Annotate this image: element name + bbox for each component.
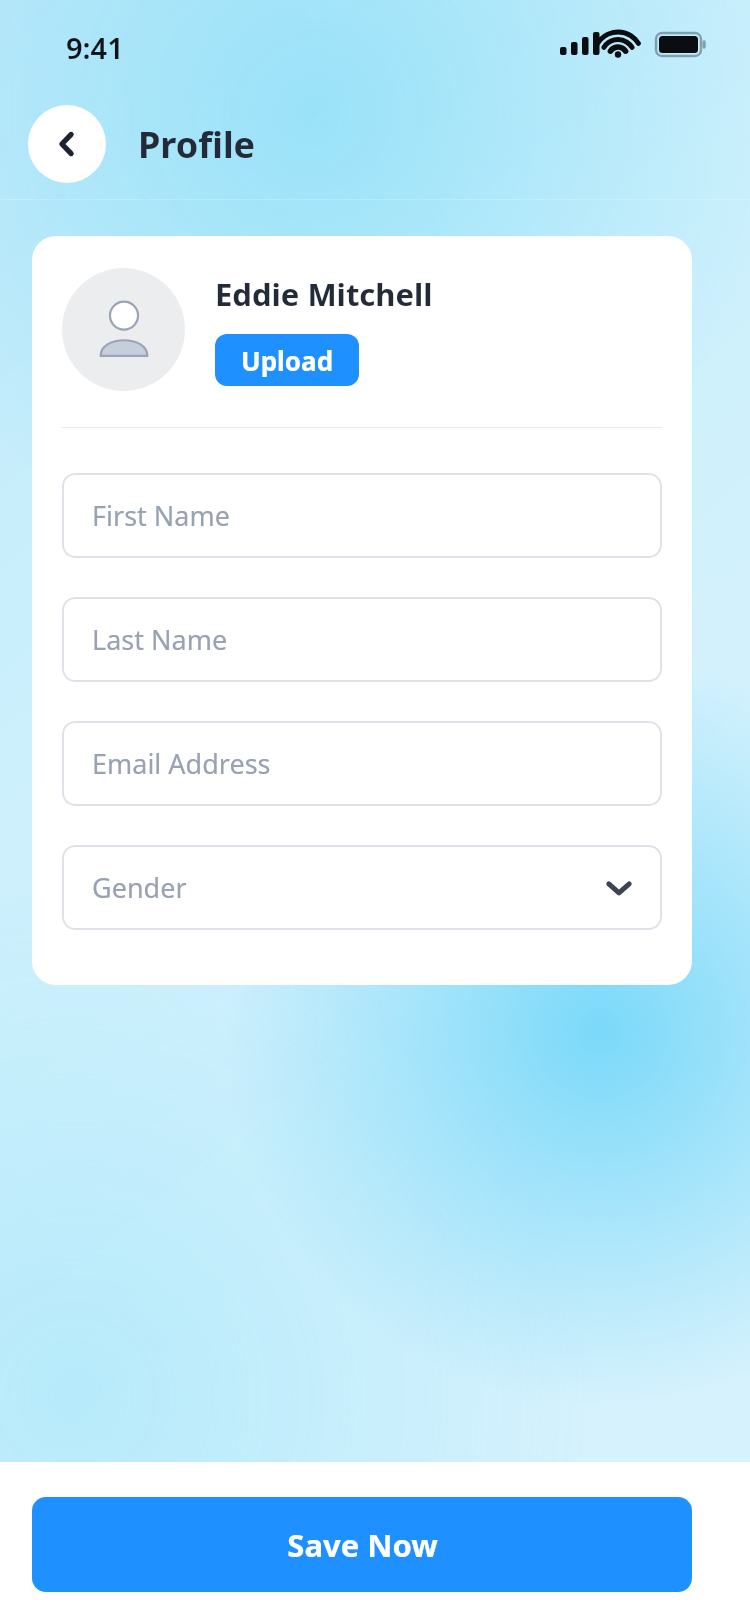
button[interactable]: Save Now xyxy=(32,1497,692,1592)
staticText: Email Address xyxy=(92,745,271,782)
staticText: First Name xyxy=(92,497,230,534)
staticText: Last Name xyxy=(92,621,228,658)
button[interactable]: Back xyxy=(28,105,106,183)
staticText: Gender xyxy=(92,869,187,906)
staticText: 9:41 xyxy=(66,28,124,67)
staticText: Save Now xyxy=(287,1524,438,1566)
staticText: Upload xyxy=(241,343,334,378)
button[interactable]: Gender xyxy=(62,845,662,930)
staticText: Eddie Mitchell xyxy=(215,273,433,315)
staticText: Profile xyxy=(138,120,256,169)
button[interactable]: Upload xyxy=(215,334,359,386)
button[interactable]: Email Address xyxy=(62,721,662,806)
button[interactable]: First Name xyxy=(62,473,662,558)
button[interactable]: Profile photo xyxy=(62,268,185,391)
button[interactable]: Last Name xyxy=(62,597,662,682)
